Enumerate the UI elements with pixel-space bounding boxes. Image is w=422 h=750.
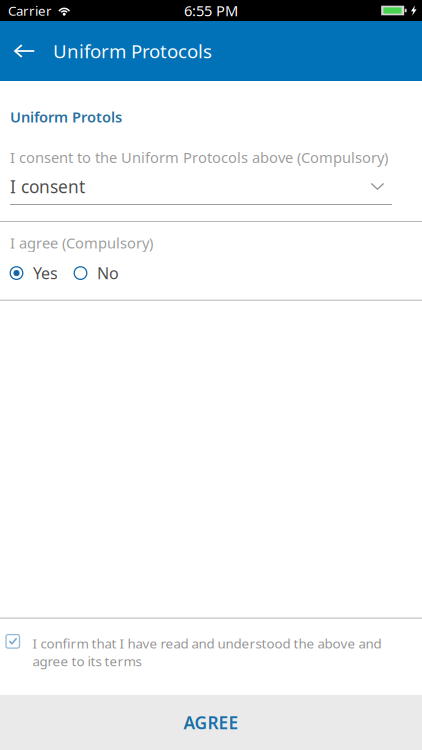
staticText: I agree (Compulsory) <box>10 233 153 252</box>
staticText: I confirm that I have read and understoo… <box>32 635 381 670</box>
staticText: I consent to the Uniform Protocols above… <box>10 147 388 167</box>
staticText: 6:55 PM <box>184 1 238 20</box>
button[interactable]: I consent <box>0 175 422 205</box>
staticText: I consent <box>10 175 85 198</box>
button[interactable]: I confirm that I have read and understoo… <box>0 635 422 670</box>
button[interactable]: No <box>74 262 119 284</box>
staticText: Uniform Protocols <box>53 39 212 63</box>
staticText: Yes <box>33 262 58 284</box>
staticText: Carrier <box>8 2 52 19</box>
button[interactable]: Yes <box>10 262 58 284</box>
staticText: AGREE <box>183 711 238 734</box>
button[interactable]: AGREE <box>0 695 422 750</box>
button[interactable]: Back <box>7 21 41 81</box>
staticText: Uniform Protols <box>10 107 122 126</box>
staticText: No <box>97 262 119 284</box>
